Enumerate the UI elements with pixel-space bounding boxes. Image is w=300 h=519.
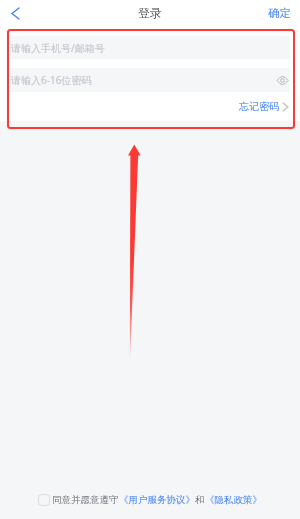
staticText: 《隐私政策》 [205,494,262,506]
button[interactable]: Agree [38,494,50,506]
button[interactable]: 忘记密码 [239,100,288,113]
button[interactable]: Show password [274,72,290,88]
button[interactable]: 请输入6-16位密码 [10,68,290,92]
staticText: 请输入手机号/邮箱号 [11,41,105,55]
staticText: 请输入6-16位密码 [11,73,92,87]
button[interactable]: 同意并愿意遵守 [52,494,262,506]
button[interactable]: 请输入手机号/邮箱号 [10,36,290,59]
staticText: 和 [195,494,205,506]
staticText: 确定 [268,6,291,20]
button[interactable]: 确定 [268,6,291,20]
staticText: 登录 [138,5,162,20]
staticText: 忘记密码 [239,100,279,113]
staticText: 同意并愿意遵守 [52,494,119,506]
button[interactable]: Back [0,0,30,28]
staticText: 《用户服务协议》 [119,494,195,506]
